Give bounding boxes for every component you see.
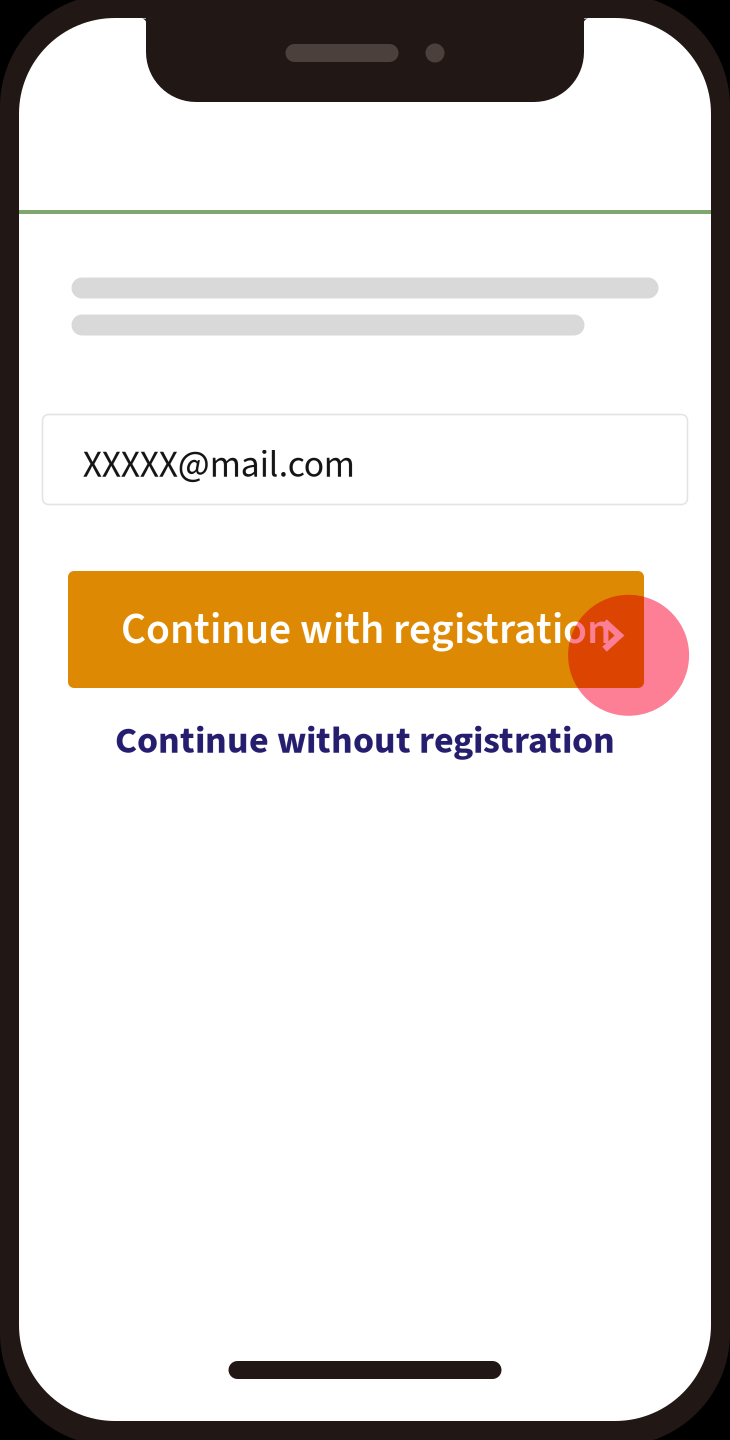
staticText: XXXXX@mail.com bbox=[83, 438, 355, 492]
button[interactable]: Continue with registration bbox=[68, 571, 644, 688]
button[interactable]: XXXXX@mail.com bbox=[42, 414, 687, 504]
staticText: Continue without registration bbox=[115, 714, 615, 768]
staticText: Continue with registration bbox=[121, 598, 611, 661]
button[interactable]: Continue without registration bbox=[77, 710, 653, 772]
